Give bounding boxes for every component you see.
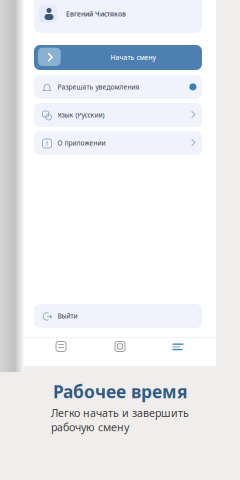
button[interactable]: Выйти	[34, 304, 202, 328]
button[interactable]: Язык (Русский)	[34, 103, 202, 127]
staticText: Рабочее время	[53, 380, 187, 403]
staticText: Евгений Чистяков	[66, 10, 126, 18]
staticText: Начать смену	[110, 53, 156, 62]
staticText: Разрешать уведомления	[57, 83, 139, 91]
button[interactable]: Задачи	[0, 0, 240, 480]
button[interactable]: О приложении	[34, 131, 202, 155]
staticText: Выйти	[57, 312, 77, 320]
staticText: Язык (Русский)	[57, 111, 104, 119]
staticText: Легко начать и завершить рабочую смену	[51, 406, 189, 434]
button[interactable]: Меню	[0, 0, 240, 480]
button[interactable]: Начать смену	[34, 45, 202, 70]
staticText: О приложении	[57, 139, 105, 147]
button[interactable]: Сканировать	[0, 0, 240, 480]
button[interactable]: Разрешать уведомления	[34, 75, 202, 99]
